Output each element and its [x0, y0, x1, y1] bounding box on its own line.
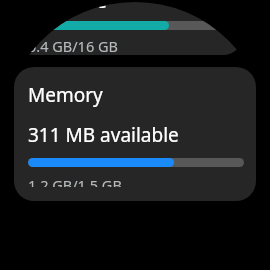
button[interactable]: Memory	[14, 67, 256, 201]
other: Storage used	[28, 21, 229, 30]
staticText: Memory	[28, 82, 103, 108]
staticText: available	[28, 0, 107, 14]
button[interactable]: available	[14, 0, 243, 55]
staticText: 1.2 GB/1.5 GB	[28, 175, 122, 187]
staticText: 311 MB available	[28, 122, 179, 148]
staticText: 5.4 GB/16 GB	[28, 36, 118, 55]
other: Memory used	[28, 158, 244, 167]
